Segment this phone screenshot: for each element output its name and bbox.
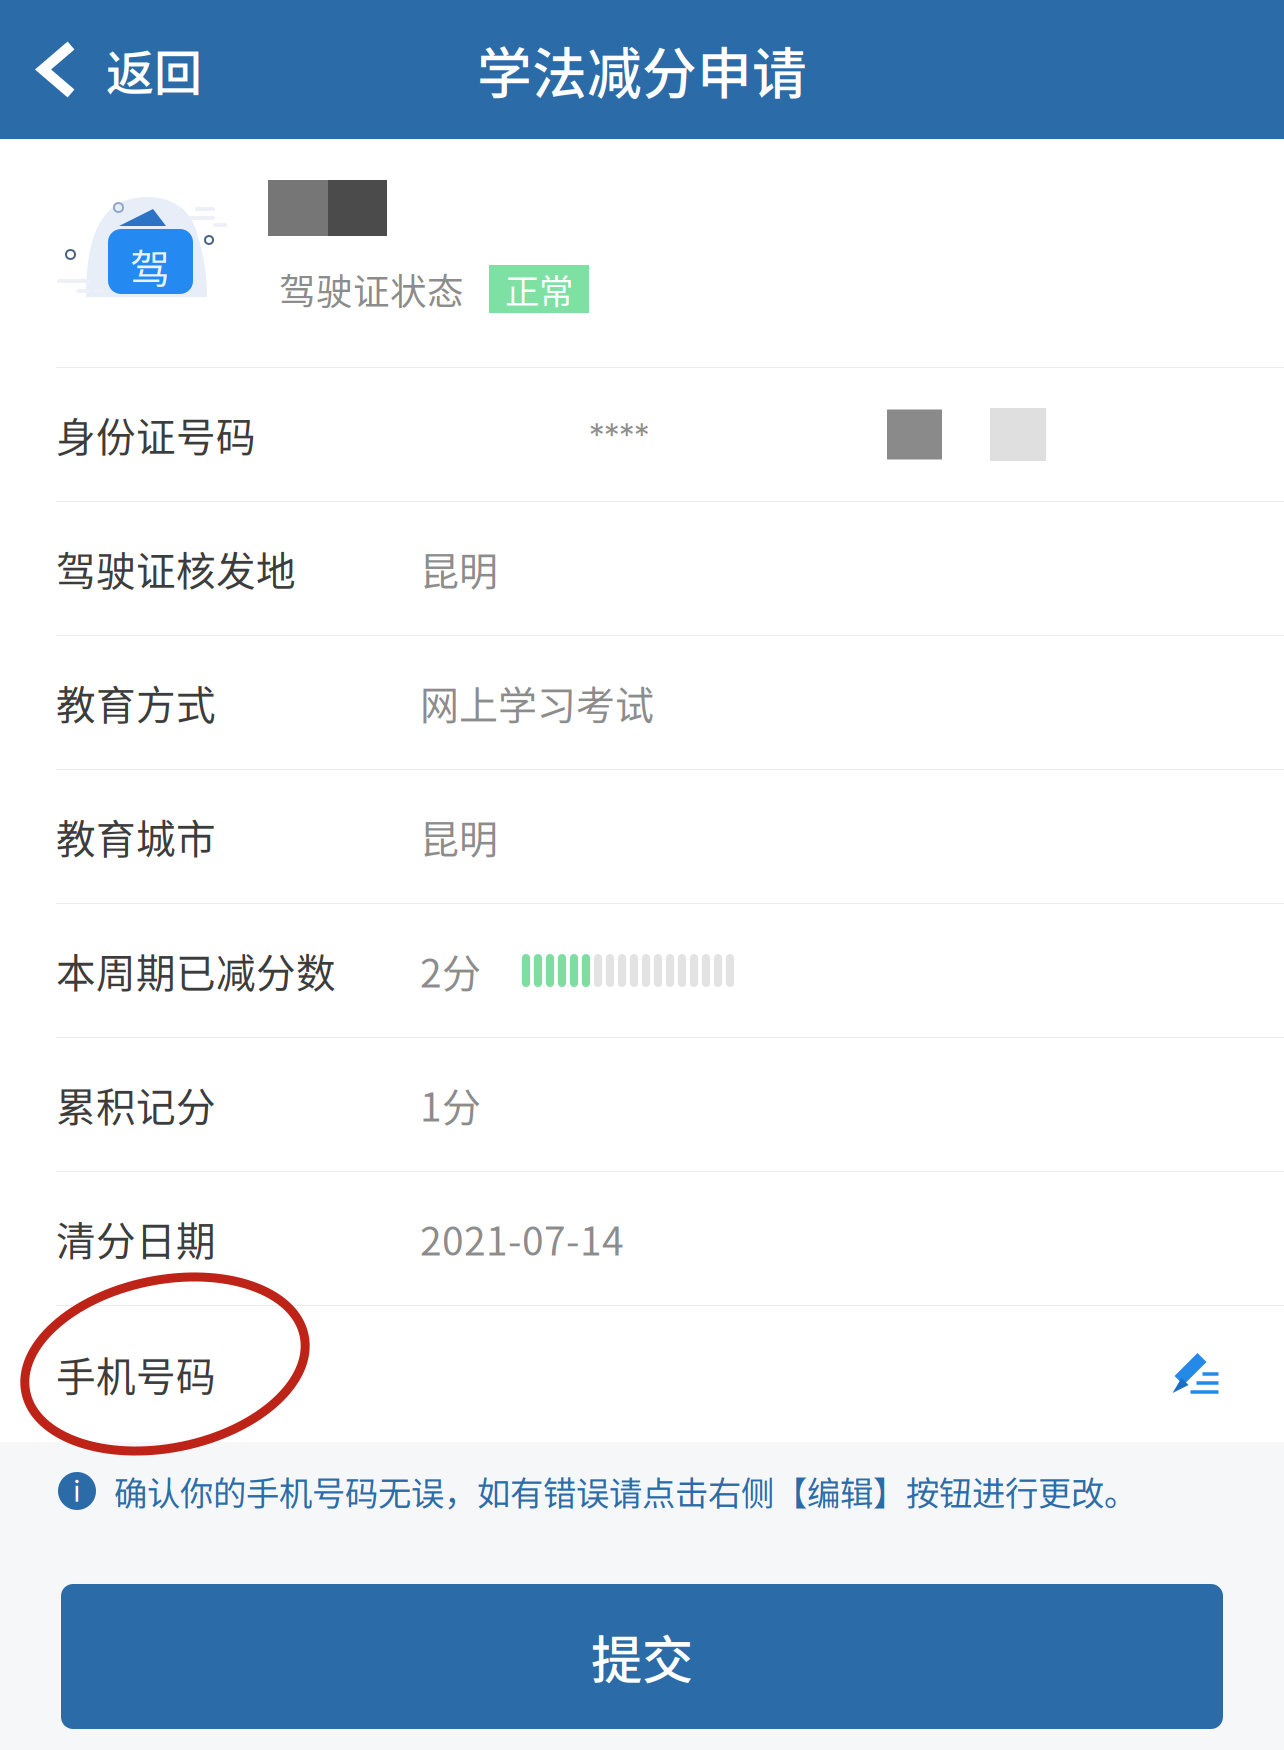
button[interactable]: 提交 [61,1584,1223,1729]
staticText: 确认你的手机号码无误，如有错误请点击右侧【编辑】按钮进行更改。 [114,1467,1137,1515]
staticText: 本周期已减分数 [56,942,336,999]
staticText: 身份证号码 [56,406,256,463]
button[interactable]: 返回 [0,0,228,139]
staticText: 驾驶证核发地 [56,540,296,597]
staticText: 2分 [420,942,481,999]
staticText: 教育城市 [56,808,216,865]
staticText: **** [589,415,649,454]
staticText: 累积记分 [56,1076,216,1133]
staticText: 2021-07-14 [420,1210,624,1267]
staticText: 驾 [130,237,170,295]
button[interactable]: 编辑手机号码 [1154,1325,1237,1423]
staticText: 返回 [106,35,202,104]
staticText: 学法减分申请 [477,30,807,109]
staticText: 正常 [505,264,573,314]
staticText: 昆明 [420,808,498,865]
staticText: 驾驶证状态 [279,262,464,315]
staticText: 手机号码 [56,1345,216,1403]
staticText: 1分 [420,1076,481,1133]
staticText: 提交 [591,1619,693,1693]
staticText: 清分日期 [56,1210,216,1267]
staticText: 网上学习考试 [420,674,654,731]
staticText: 教育方式 [56,674,216,731]
staticText: 昆明 [420,540,498,597]
staticText: i [73,1473,80,1509]
